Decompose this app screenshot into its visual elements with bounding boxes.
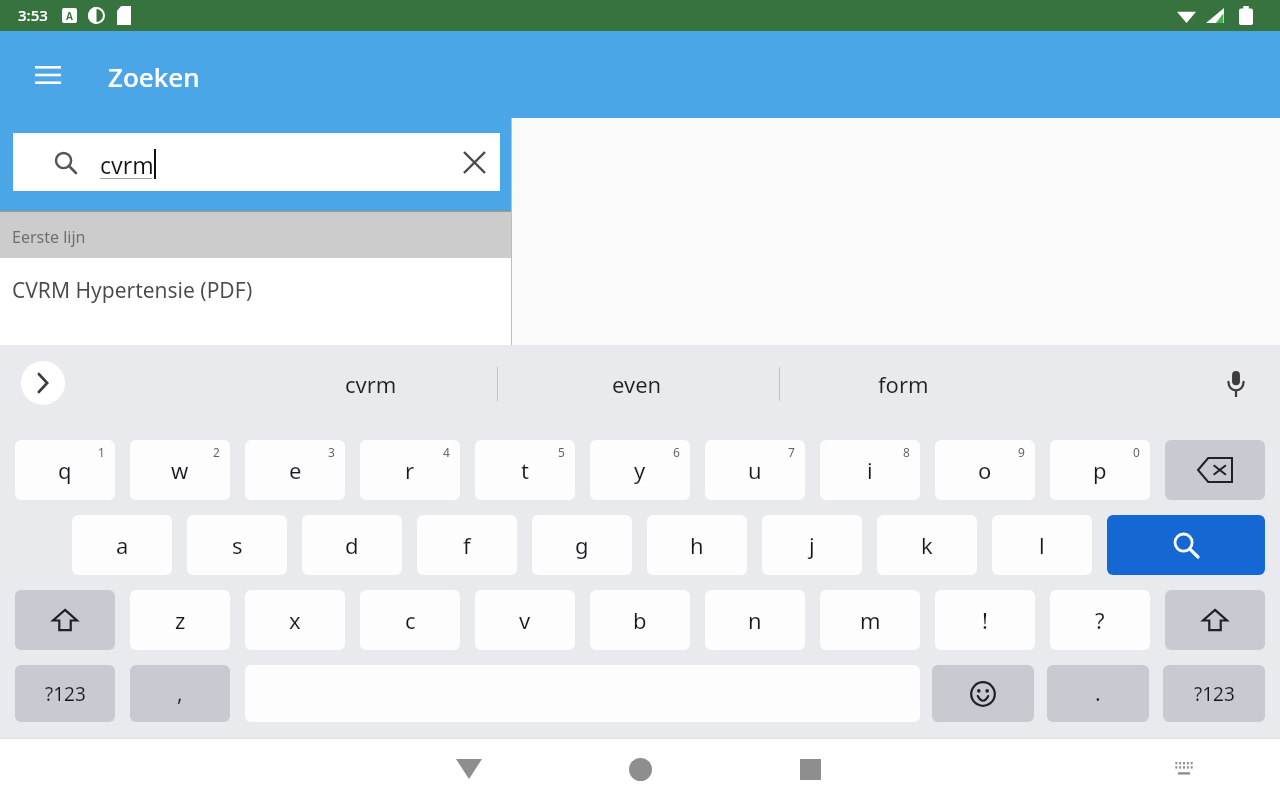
button[interactable]: y [590,440,690,500]
button[interactable]: n [705,590,805,650]
button[interactable]: ? [1050,590,1150,650]
staticText: d [345,530,359,560]
button[interactable]: Emoji [932,665,1034,722]
button[interactable]: d [302,515,402,575]
button[interactable]: q [15,440,115,500]
button[interactable]: cvrm [13,133,500,191]
button[interactable]: form [798,361,1008,407]
staticText: k [921,530,933,560]
button[interactable]: f [417,515,517,575]
staticText: 6 [673,444,680,460]
button[interactable]: even [532,361,742,407]
button[interactable]: ! [935,590,1035,650]
button[interactable]: CVRM Hypertensie (PDF) [0,258,511,345]
staticText: Eerste lijn [12,226,86,248]
staticText: b [633,605,647,635]
button[interactable]: Home [611,743,669,795]
staticText: i [867,455,873,485]
button[interactable]: t [475,440,575,500]
button[interactable]: i [820,440,920,500]
staticText: c [405,605,416,635]
staticText: A [66,9,73,23]
staticText: , [177,679,183,708]
staticText: ? [1095,605,1105,635]
button[interactable]: h [647,515,747,575]
staticText: j [809,530,815,560]
button[interactable]: . [1047,665,1149,722]
staticText: f [463,530,471,560]
staticText: y [634,455,646,485]
staticText: l [1039,530,1045,560]
staticText: p [1093,455,1107,485]
button[interactable]: z [130,590,230,650]
button[interactable]: a [72,515,172,575]
staticText: 3:53 [18,5,48,25]
staticText: even [612,369,662,399]
staticText: 4 [443,444,450,460]
button[interactable]: s [187,515,287,575]
button[interactable]: Voice input [1212,360,1260,408]
button[interactable]: j [762,515,862,575]
button[interactable]: b [590,590,690,650]
staticText: form [878,369,929,399]
staticText: 7 [788,444,795,460]
button[interactable]: cvrm [266,361,476,407]
staticText: s [232,530,243,560]
button[interactable]: l [992,515,1092,575]
staticText: v [519,605,531,635]
staticText: CVRM Hypertensie (PDF) [12,276,253,305]
button[interactable]: v [475,590,575,650]
staticText: u [748,455,762,485]
button[interactable]: u [705,440,805,500]
button[interactable]: e [245,440,345,500]
button[interactable]: o [935,440,1035,500]
button[interactable]: Search [1107,515,1265,575]
staticText: g [575,530,589,560]
staticText: n [748,605,762,635]
staticText: Zoeken [108,59,200,94]
staticText: m [860,605,881,635]
staticText: r [405,455,415,485]
staticText: cvrm [345,369,397,399]
staticText: ! [982,605,988,635]
button[interactable]: w [130,440,230,500]
staticText: cvrm [100,149,154,180]
button[interactable]: x [245,590,345,650]
button[interactable]: Recent apps [781,743,839,795]
staticText: t [521,455,529,485]
button[interactable]: Back [440,743,498,795]
staticText: 5 [558,444,565,460]
button[interactable]: Clear search [450,145,498,179]
button[interactable]: Eerste lijn [0,212,512,258]
staticText: z [175,605,186,635]
button[interactable]: ?123 [15,665,115,722]
staticText: ?123 [1194,681,1235,707]
staticText: w [171,455,189,485]
button[interactable]: r [360,440,460,500]
staticText: h [690,530,704,560]
button[interactable]: More suggestions [21,361,65,405]
button[interactable]: Backspace [1165,440,1265,500]
staticText: 1 [98,444,105,460]
button[interactable]: Keyboard indicator [1158,743,1210,795]
staticText: o [978,455,992,485]
button[interactable]: Open navigation menu [24,51,72,99]
staticText: 8 [903,444,910,460]
button[interactable]: Shift [1165,590,1265,650]
button[interactable]: , [130,665,230,722]
staticText: 9 [1018,444,1025,460]
staticText: 3 [328,444,335,460]
staticText: ?123 [45,681,86,707]
staticText: a [116,530,129,560]
button[interactable]: ?123 [1163,665,1265,722]
staticText: 0 [1133,444,1140,460]
button[interactable]: k [877,515,977,575]
button[interactable]: c [360,590,460,650]
button[interactable]: p [1050,440,1150,500]
staticText: . [1095,679,1101,708]
button[interactable]: g [532,515,632,575]
button[interactable]: Shift [15,590,115,650]
staticText: 2 [213,444,220,460]
button[interactable]: m [820,590,920,650]
